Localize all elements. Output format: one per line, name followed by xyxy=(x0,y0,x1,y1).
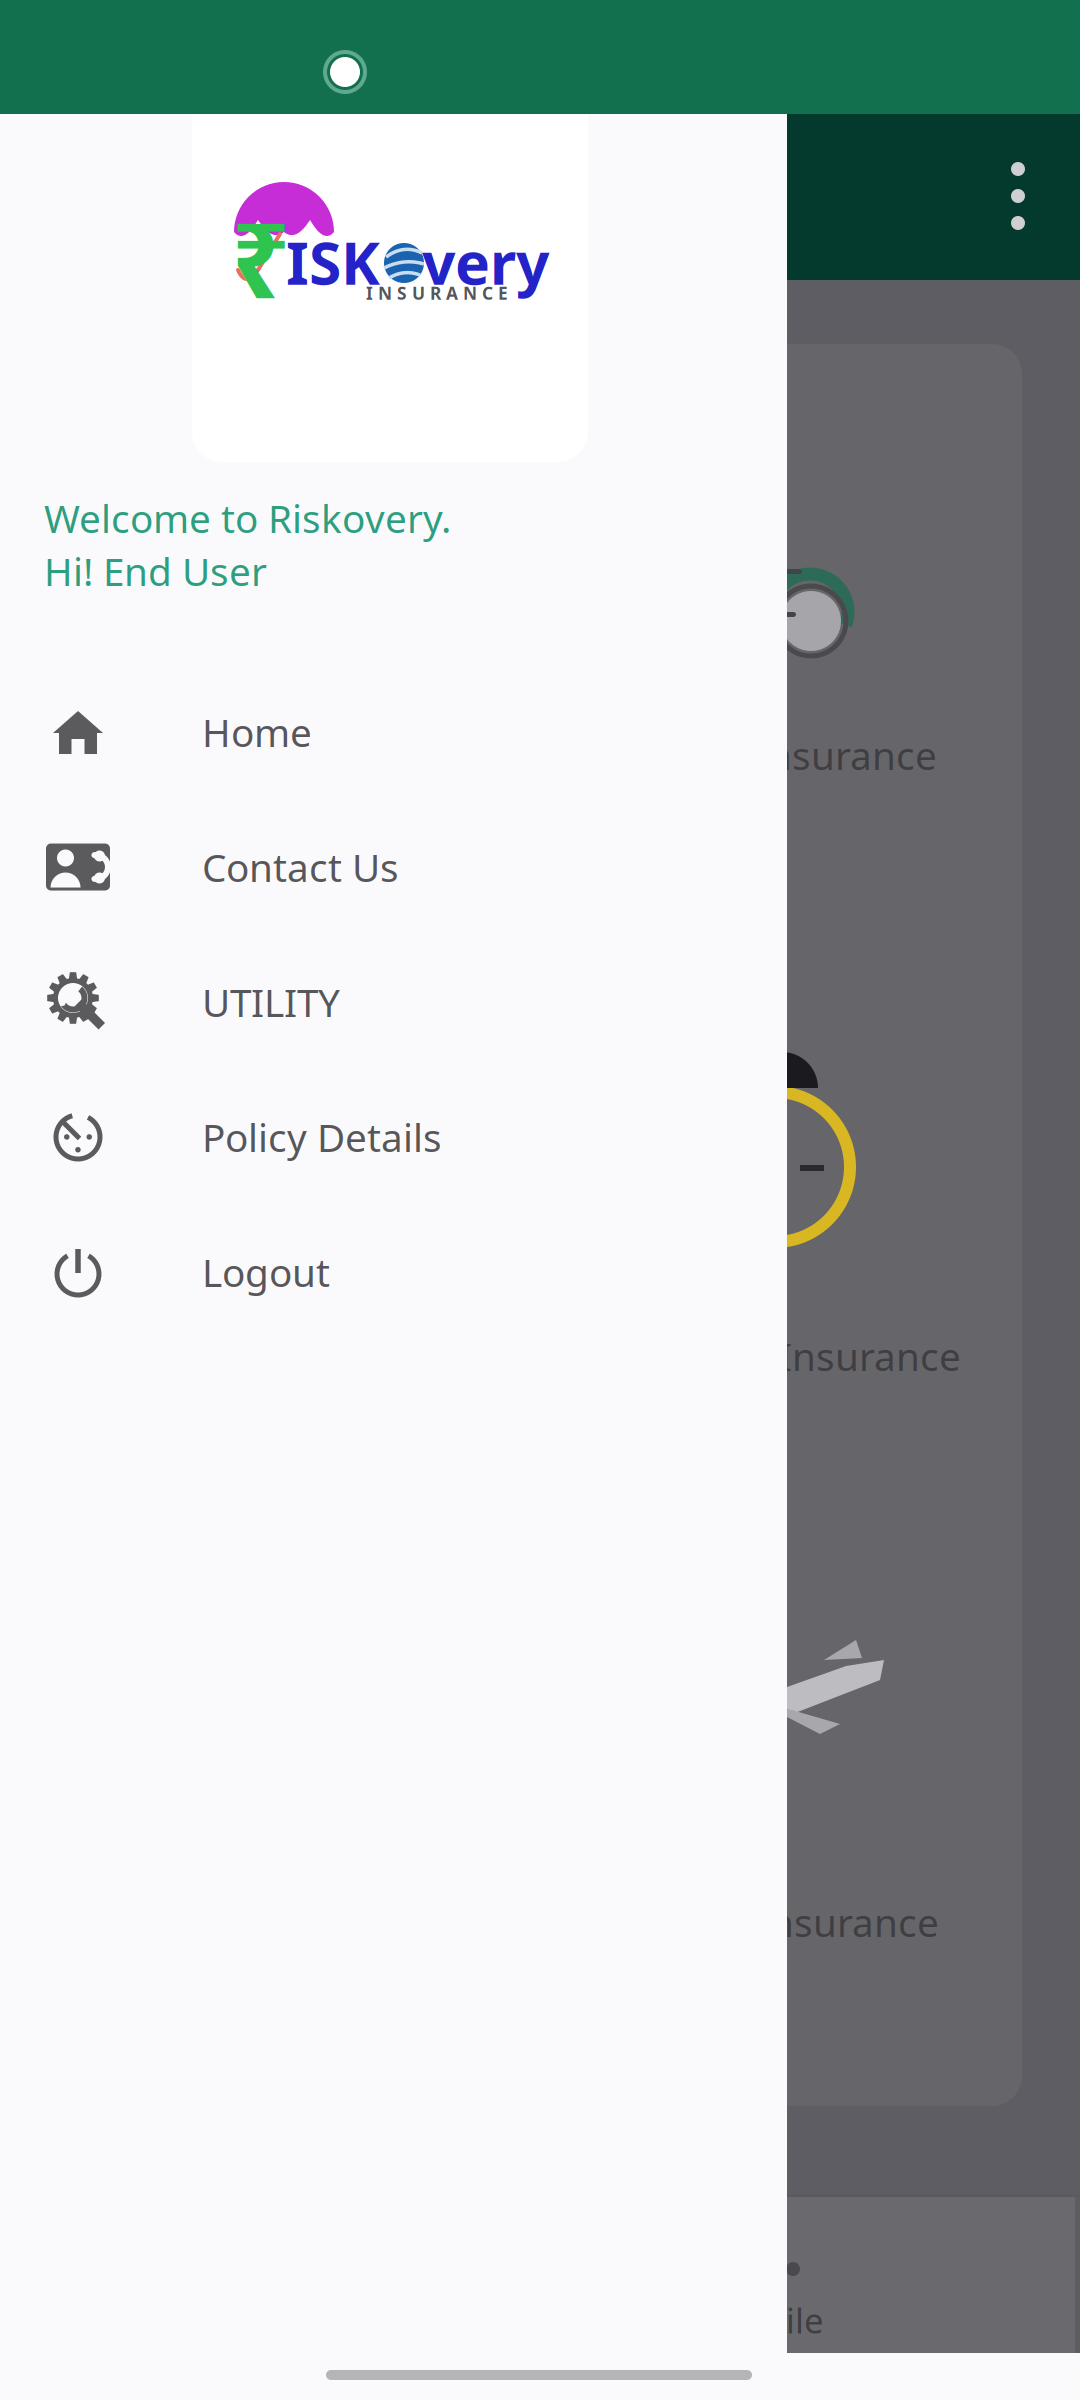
button[interactable]: Profile xyxy=(718,2244,878,2374)
staticText: UTILITY xyxy=(202,976,340,1028)
staticText: Logout xyxy=(202,1246,330,1298)
button[interactable]: More options xyxy=(970,148,1066,244)
staticText: Home xyxy=(202,706,312,758)
button[interactable]: Home xyxy=(0,664,787,799)
staticText: Hi! End User xyxy=(44,545,267,597)
staticText: Welcome to Riskovery. xyxy=(44,492,451,544)
staticText: ISK xyxy=(286,223,380,301)
staticText: Travel Insurance xyxy=(638,1896,939,1948)
button[interactable]: Logout xyxy=(0,1204,787,1339)
staticText: Personal Accident Insurance xyxy=(443,1330,961,1382)
button[interactable]: Policy Details xyxy=(0,1069,787,1204)
staticText: Profile xyxy=(718,2297,824,2343)
staticText: ₹ xyxy=(231,189,290,327)
staticText: Contact Us xyxy=(202,841,399,893)
staticText: Two Wheeler Insurance xyxy=(509,729,937,781)
staticText: Policy Details xyxy=(202,1111,442,1163)
staticText: very xyxy=(422,223,549,301)
button[interactable]: Contact Us xyxy=(0,799,787,934)
staticText: I N S U R A N C E xyxy=(366,281,508,304)
button[interactable]: UTILITY xyxy=(0,934,787,1069)
